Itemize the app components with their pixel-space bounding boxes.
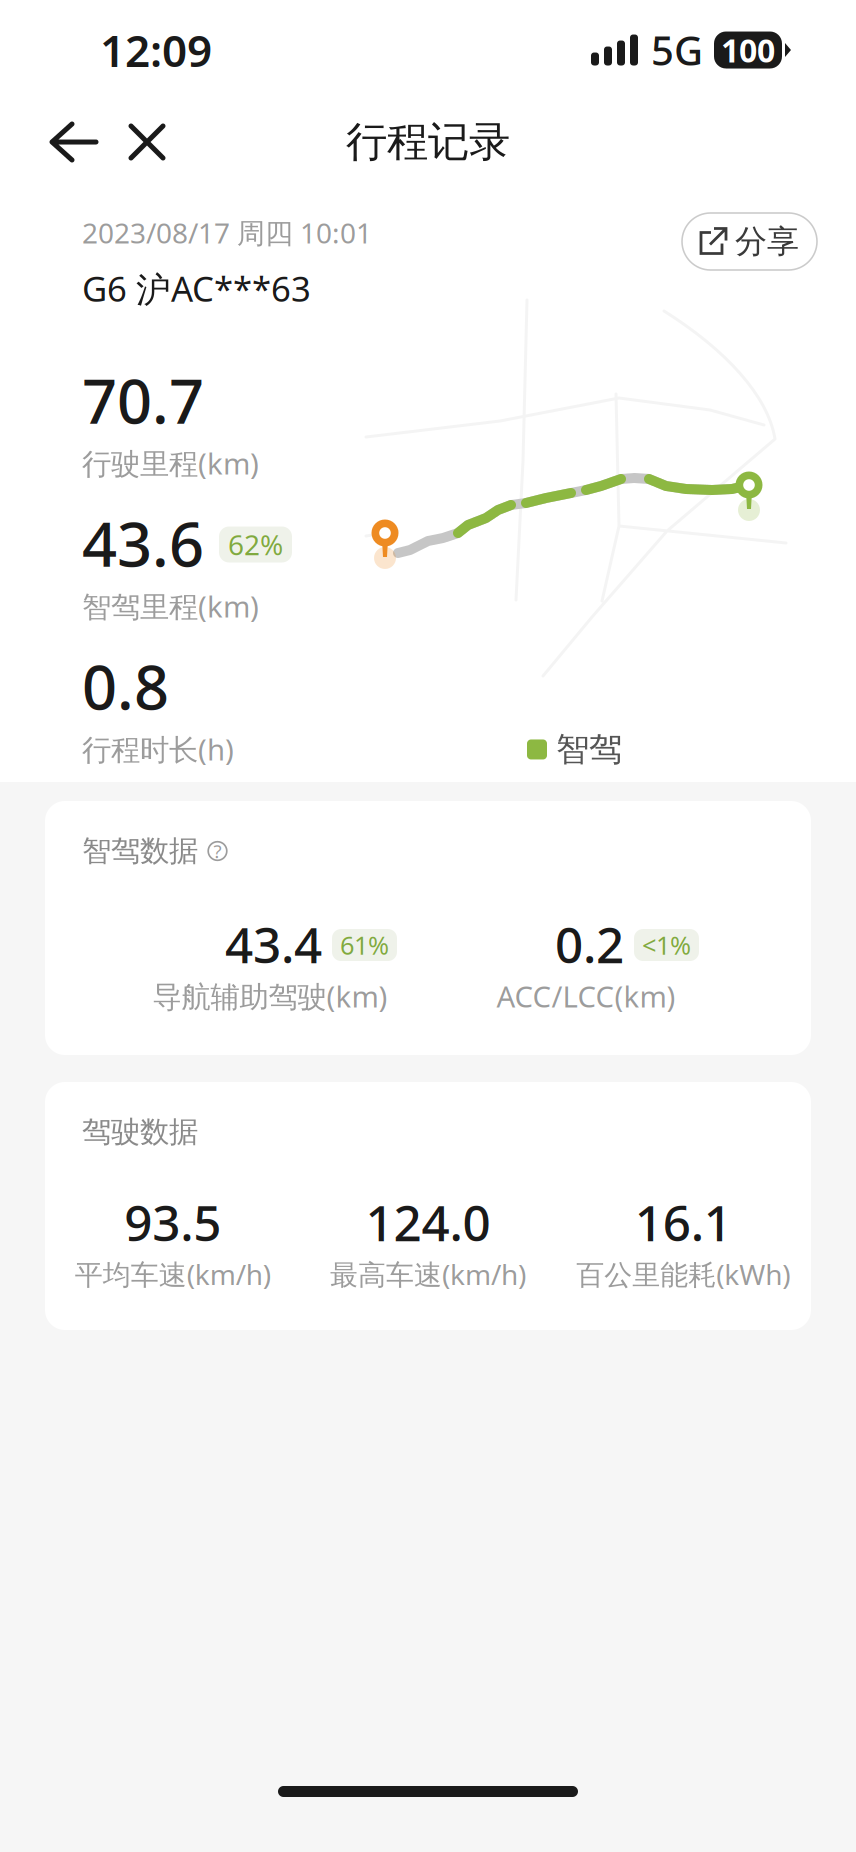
button[interactable]: 关闭: [107, 107, 187, 177]
staticText: 43.6: [82, 502, 204, 584]
staticText: 0.2: [555, 911, 624, 977]
staticText: 0.8: [82, 645, 169, 727]
staticText: 分享: [735, 222, 799, 261]
staticText: 16.1: [635, 1189, 732, 1255]
staticText: G6 沪AC***63: [82, 265, 311, 311]
staticText: 平均车速(km/h): [75, 1255, 271, 1293]
staticText: 百公里能耗(kWh): [576, 1255, 790, 1293]
staticText: 智驾数据: [82, 833, 198, 869]
staticText: 行程记录: [346, 117, 510, 167]
staticText: 93.5: [124, 1189, 221, 1255]
staticText: 62%: [228, 526, 283, 563]
staticText: 驾驶数据: [82, 1114, 198, 1150]
staticText: ACC/LCC(km): [496, 977, 675, 1016]
staticText: 最高车速(km/h): [330, 1255, 526, 1293]
staticText: 70.7: [82, 359, 204, 441]
staticText: 行程时长(h): [82, 729, 234, 768]
staticText: 导航辅助驾驶(km): [152, 977, 387, 1016]
button[interactable]: 返回: [42, 107, 107, 177]
staticText: 12:09: [100, 21, 212, 79]
button[interactable]: 分享: [682, 213, 817, 270]
staticText: 5G: [651, 23, 703, 76]
staticText: ?: [213, 839, 221, 863]
staticText: 智驾: [556, 729, 622, 770]
staticText: 智驾里程(km): [82, 586, 259, 625]
staticText: <1%: [642, 928, 691, 962]
staticText: 124.0: [365, 1189, 490, 1255]
staticText: 61%: [340, 928, 389, 962]
staticText: 行驶里程(km): [82, 443, 259, 482]
staticText: 100: [721, 29, 775, 71]
staticText: 43.4: [225, 911, 322, 977]
staticText: 2023/08/17 周四 10:01: [82, 214, 372, 251]
